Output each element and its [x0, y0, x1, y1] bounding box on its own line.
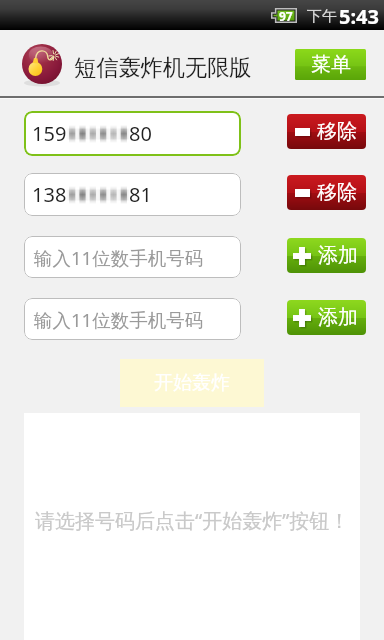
- button[interactable]: 添加: [287, 238, 366, 273]
- button[interactable]: 138: [24, 173, 241, 216]
- button[interactable]: 移除: [287, 114, 366, 149]
- staticText: 菜单: [311, 52, 351, 77]
- staticText: 下午: [307, 7, 337, 26]
- staticText: 81: [129, 181, 152, 208]
- staticText: 97: [279, 8, 293, 23]
- staticText: 138: [32, 181, 67, 208]
- button[interactable]: 添加: [287, 300, 366, 335]
- button[interactable]: 菜单: [295, 49, 366, 80]
- staticText: 添加: [318, 305, 358, 330]
- staticText: 移除: [317, 119, 357, 144]
- staticText: 开始轰炸: [154, 371, 230, 395]
- staticText: 80: [129, 120, 152, 147]
- staticText: 请选择号码后点击“开始轰炸”按钮！: [35, 507, 350, 534]
- button[interactable]: 159: [24, 111, 241, 156]
- button[interactable]: 开始轰炸: [120, 359, 264, 407]
- staticText: 添加: [318, 243, 358, 268]
- staticText: 移除: [317, 180, 357, 205]
- button[interactable]: 输入11位数手机号码: [24, 298, 241, 340]
- button[interactable]: 输入11位数手机号码: [24, 236, 241, 278]
- staticText: 输入11位数手机号码: [34, 245, 204, 270]
- staticText: 159: [32, 120, 67, 147]
- staticText: 5:43: [339, 3, 379, 30]
- staticText: 短信轰炸机无限版: [74, 54, 252, 82]
- staticText: 输入11位数手机号码: [34, 307, 204, 332]
- button[interactable]: 移除: [287, 175, 366, 210]
